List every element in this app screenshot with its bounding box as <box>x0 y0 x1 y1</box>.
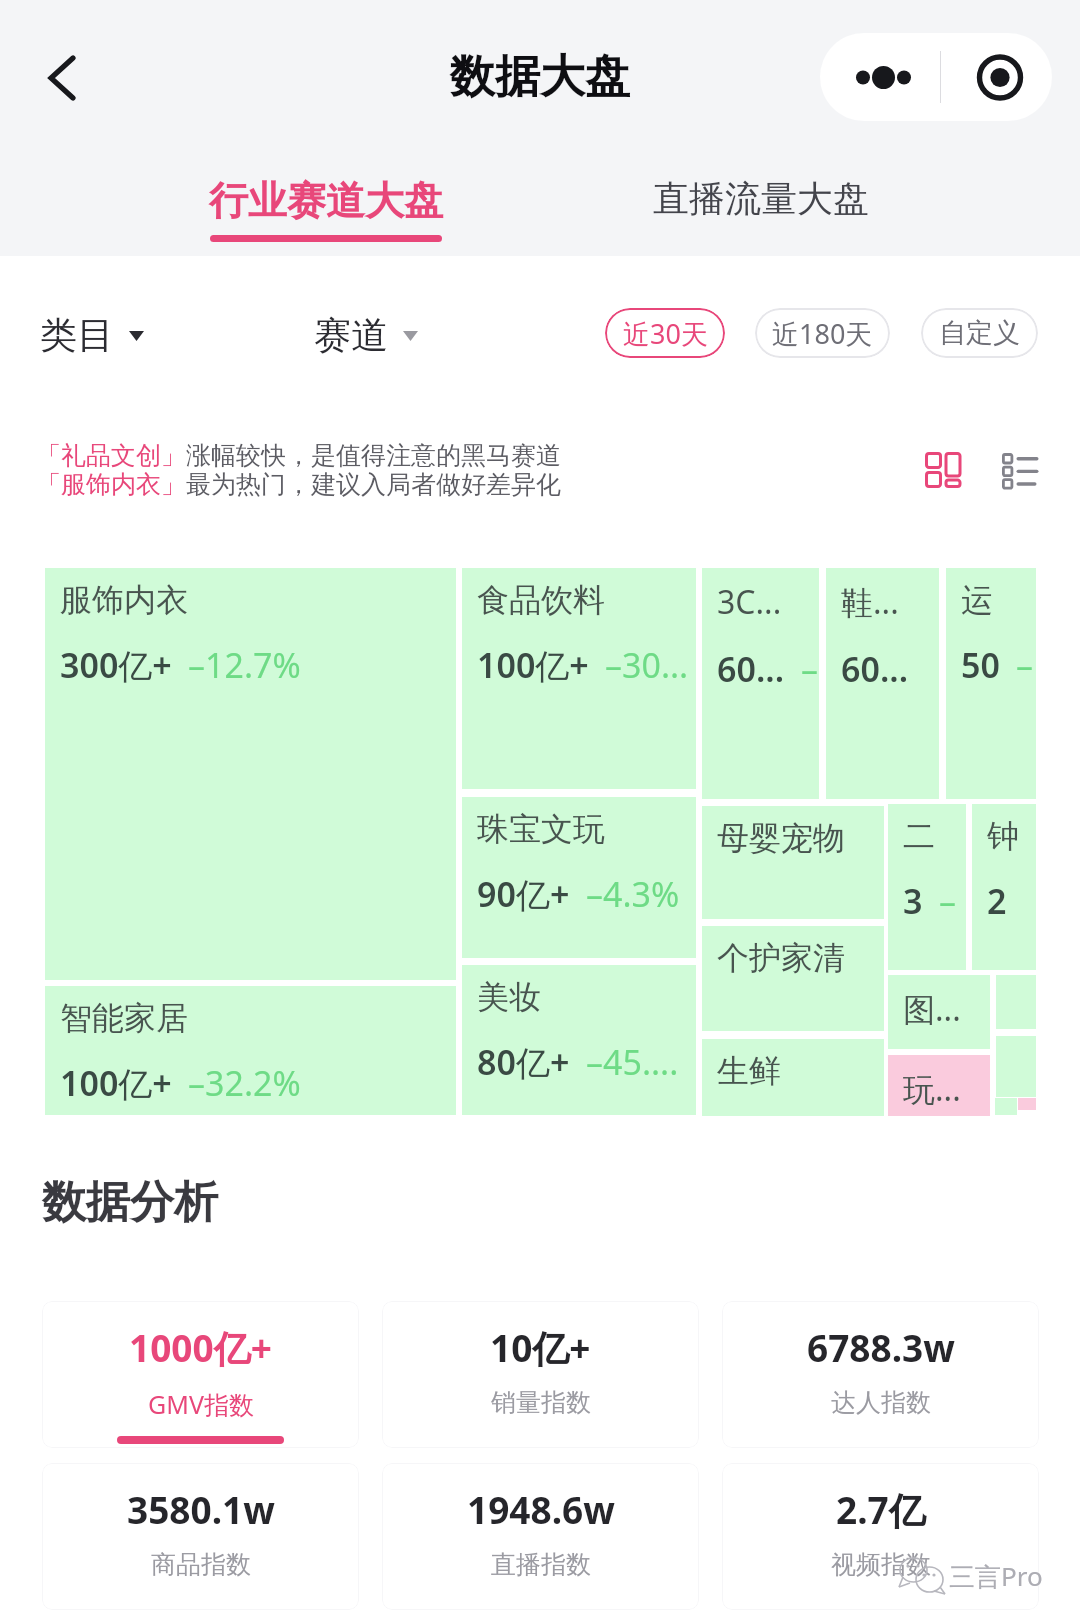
staticText: 近180天 <box>772 315 873 352</box>
button[interactable]: 10亿+ <box>382 1301 699 1448</box>
staticText: GMV指数 <box>148 1387 254 1421</box>
staticText: 销量指数 <box>491 1387 591 1418</box>
button[interactable]: Close <box>941 33 1052 121</box>
button[interactable]: 食品饮料 <box>462 568 696 789</box>
staticText: 最为热门，建议入局者做好差异化 <box>186 469 561 500</box>
button[interactable]: 赛道 <box>314 312 418 359</box>
button[interactable]: 智能家居 <box>45 986 456 1115</box>
button[interactable]: Grid view <box>907 434 979 506</box>
button[interactable]: 2.7亿 <box>722 1463 1039 1610</box>
button[interactable]: 运 <box>946 568 1036 799</box>
button[interactable]: 钟 <box>972 804 1036 970</box>
staticText: 涨幅较快，是值得注意的黑马赛道 <box>186 440 561 471</box>
staticText: 图... <box>903 987 961 1031</box>
staticText: – <box>939 878 956 924</box>
staticText: 3C... <box>717 580 782 624</box>
staticText: 直播指数 <box>491 1549 591 1580</box>
staticText: –32.2% <box>188 1060 301 1106</box>
button[interactable]: List view <box>984 434 1056 506</box>
staticText: 60... <box>717 646 785 692</box>
staticText: 生鲜 <box>717 1051 781 1091</box>
staticText: 50 <box>961 642 1000 688</box>
staticText: –12.7% <box>188 642 301 688</box>
staticText: 智能家居 <box>60 998 188 1038</box>
button[interactable]: 服饰内衣 <box>45 568 456 980</box>
button[interactable]: 类目 <box>40 312 144 359</box>
staticText: 行业赛道大盘 <box>209 176 443 225</box>
button[interactable]: 近30天 <box>605 308 725 358</box>
staticText: 母婴宠物 <box>717 818 845 858</box>
staticText: 自定义 <box>939 316 1020 350</box>
staticText: 3580.1w <box>127 1484 275 1534</box>
staticText: –45.... <box>586 1039 679 1085</box>
staticText: 300亿+ <box>60 642 172 688</box>
staticText: 三言Pro <box>949 1558 1043 1594</box>
staticText: 「礼品文创」 <box>36 440 186 471</box>
staticText: 美妆 <box>477 977 541 1017</box>
button[interactable]: 生鲜 <box>702 1039 884 1116</box>
button[interactable]: 二 <box>888 804 966 970</box>
button[interactable]: 6788.3w <box>722 1301 1039 1448</box>
button[interactable]: 图... <box>888 975 990 1049</box>
staticText: 60... <box>841 646 909 692</box>
staticText: –30... <box>605 642 689 688</box>
button[interactable]: 珠宝文玩 <box>462 797 696 958</box>
button[interactable]: 美妆 <box>462 965 696 1115</box>
staticText: 100亿+ <box>477 642 589 688</box>
button[interactable]: 行业赛道大盘 <box>186 152 466 256</box>
staticText: –4.3% <box>586 871 680 917</box>
button[interactable]: 1948.6w <box>382 1463 699 1610</box>
staticText: – <box>801 646 818 692</box>
staticText: – <box>1016 642 1033 688</box>
button[interactable]: 玩... <box>888 1055 990 1116</box>
staticText: 10亿+ <box>490 1322 591 1373</box>
staticText: 食品饮料 <box>477 580 605 620</box>
staticText: 2.7亿 <box>836 1484 926 1535</box>
button[interactable]: 母婴宠物 <box>702 806 884 919</box>
staticText: 2 <box>987 878 1007 924</box>
staticText: 钟 <box>987 816 1019 856</box>
staticText: 运 <box>961 580 993 620</box>
staticText: 100亿+ <box>60 1060 172 1106</box>
button[interactable]: 近180天 <box>755 308 890 358</box>
button[interactable]: More <box>820 33 940 121</box>
staticText: 二 <box>903 816 935 856</box>
staticText: 「服饰内衣」 <box>36 469 186 500</box>
button[interactable]: 自定义 <box>921 308 1038 358</box>
staticText: 数据大盘 <box>450 49 630 106</box>
button[interactable]: 个护家清 <box>702 926 884 1031</box>
staticText: 赛道 <box>314 312 388 359</box>
staticText: 类目 <box>40 312 114 359</box>
staticText: 6788.3w <box>807 1322 955 1372</box>
staticText: 玩... <box>903 1067 961 1111</box>
button[interactable]: Back <box>28 45 92 109</box>
staticText: 3 <box>903 878 923 924</box>
staticText: 商品指数 <box>151 1549 251 1580</box>
staticText: 个护家清 <box>717 938 845 978</box>
staticText: 近30天 <box>623 315 708 352</box>
staticText: 服饰内衣 <box>60 580 188 620</box>
staticText: 80亿+ <box>477 1039 570 1085</box>
button[interactable]: 3C... <box>702 568 819 799</box>
staticText: 1948.6w <box>467 1484 615 1534</box>
staticText: 鞋... <box>841 580 899 624</box>
button[interactable]: 鞋... <box>826 568 939 799</box>
staticText: 达人指数 <box>831 1387 931 1418</box>
button[interactable]: 直播流量大盘 <box>630 152 891 256</box>
staticText: 1000亿+ <box>129 1322 272 1373</box>
staticText: 珠宝文玩 <box>477 809 605 849</box>
button[interactable]: 3580.1w <box>42 1463 359 1610</box>
staticText: 数据分析 <box>42 1175 218 1230</box>
staticText: 90亿+ <box>477 871 570 917</box>
button[interactable]: 1000亿+ <box>42 1301 359 1448</box>
staticText: 直播流量大盘 <box>653 176 869 221</box>
staticText: 视频指数 <box>831 1549 931 1580</box>
